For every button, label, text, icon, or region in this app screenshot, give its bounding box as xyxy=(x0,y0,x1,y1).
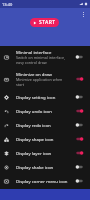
button[interactable]: Display corner menu icon xyxy=(0,174,90,188)
button[interactable]: Minimize on draw xyxy=(0,68,90,90)
button[interactable]: Toggle xyxy=(75,54,84,60)
staticText: Minimize on draw xyxy=(16,71,52,77)
button[interactable]: Minimal interface xyxy=(0,46,90,68)
staticText: Minimal interface xyxy=(16,49,52,55)
staticText: Minimize application when xyxy=(16,77,63,82)
staticText: START xyxy=(39,19,56,26)
button[interactable]: Display undo icon xyxy=(0,104,90,118)
staticText: easy control draw xyxy=(16,60,47,65)
button[interactable]: Display setting icon xyxy=(0,90,90,104)
staticText: Display corner menu icon xyxy=(16,178,73,184)
staticText: Display shake icon xyxy=(16,164,73,170)
button[interactable]: Display layer icon xyxy=(0,146,90,160)
button[interactable]: Toggle xyxy=(75,76,84,82)
button[interactable]: Display shape icon xyxy=(0,132,90,146)
button[interactable]: Toggle xyxy=(75,94,84,100)
button[interactable]: Toggle xyxy=(75,122,84,128)
button[interactable]: Toggle xyxy=(75,136,84,142)
staticText: Display redo icon xyxy=(16,122,73,128)
button[interactable]: Display redo icon xyxy=(0,118,90,132)
button[interactable]: Toggle xyxy=(75,150,84,156)
button[interactable]: Toggle xyxy=(75,108,84,114)
button[interactable]: Display shake icon xyxy=(0,160,90,174)
staticText: 13:40 xyxy=(2,2,13,7)
button[interactable]: Toggle xyxy=(75,164,84,170)
staticText: Display shape icon xyxy=(16,136,73,142)
button[interactable]: START xyxy=(30,18,59,27)
staticText: Switch on minimal interface, xyxy=(16,55,66,60)
staticText: Display layer icon xyxy=(16,150,73,156)
staticText: Display setting icon xyxy=(16,94,73,100)
button[interactable]: More options xyxy=(78,9,88,19)
staticText: start xyxy=(16,82,25,87)
button[interactable]: Toggle xyxy=(75,178,84,184)
staticText: Display undo icon xyxy=(16,108,73,114)
